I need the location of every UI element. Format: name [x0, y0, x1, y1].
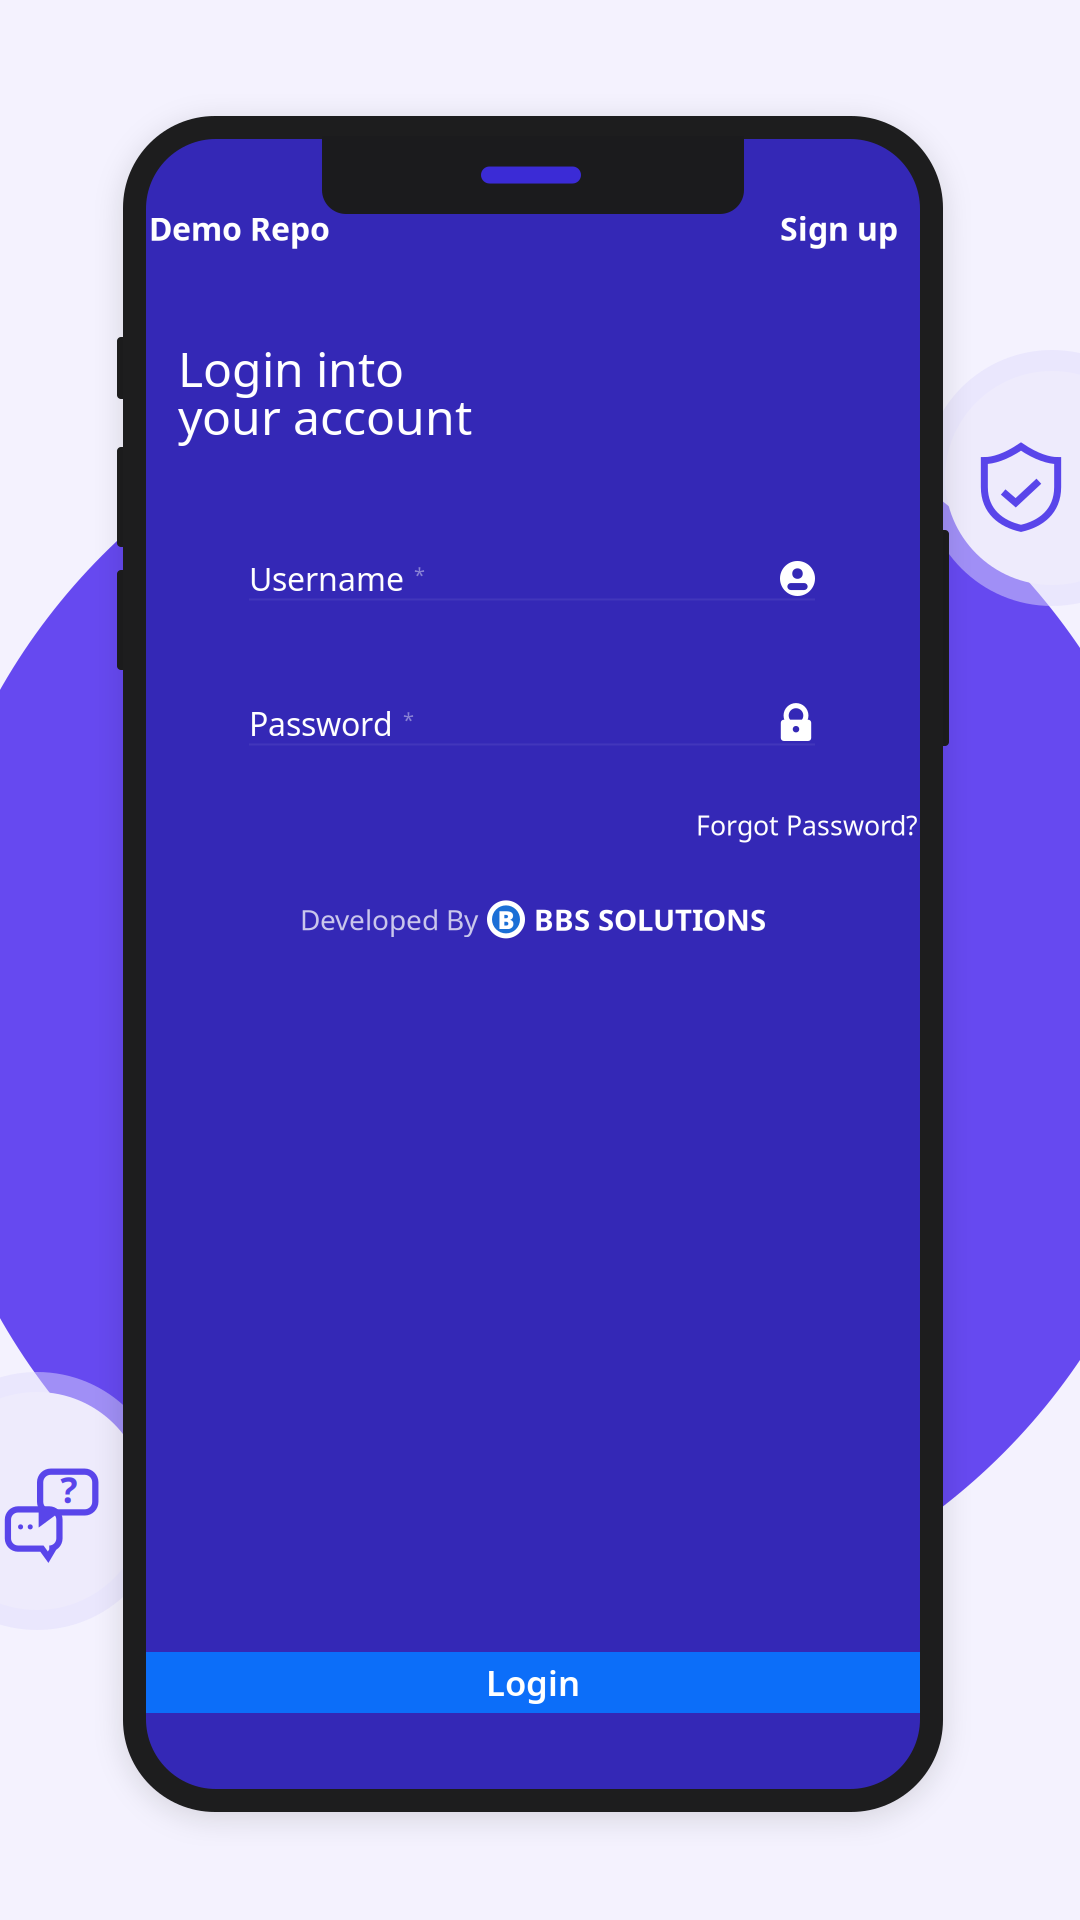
button[interactable]: Username	[249, 556, 815, 602]
staticText: your account	[178, 385, 472, 448]
staticText: B	[497, 903, 514, 936]
staticText: Demo Repo	[149, 207, 330, 249]
button[interactable]: Login	[146, 1652, 920, 1713]
button[interactable]: Security	[924, 350, 1080, 606]
staticText: Login into	[178, 337, 404, 400]
button[interactable]: Help and support	[0, 1372, 166, 1630]
staticText: *	[393, 706, 414, 733]
staticText: Forgot Password?	[696, 807, 918, 843]
button[interactable]: Demo Repo	[143, 200, 336, 256]
staticText: BBS SOLUTIONS	[534, 900, 766, 939]
staticText: Username	[249, 557, 404, 600]
staticText: Password	[249, 702, 393, 745]
staticText: ?	[60, 1465, 77, 1513]
button[interactable]: Forgot Password?	[690, 802, 924, 848]
staticText: Developed By	[300, 901, 478, 938]
staticText: Sign up	[780, 207, 898, 249]
button[interactable]: Sign up	[774, 200, 904, 256]
staticText: *	[404, 561, 425, 588]
button[interactable]: Password	[249, 701, 815, 747]
staticText: Login	[486, 1659, 580, 1705]
